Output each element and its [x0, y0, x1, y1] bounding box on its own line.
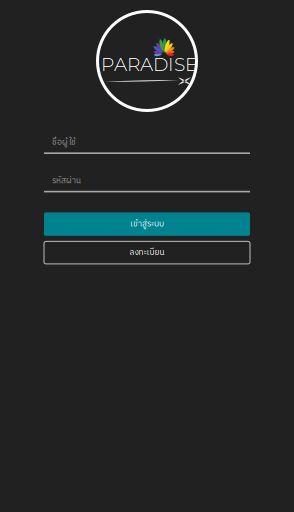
staticText: ลงทะเบียน	[129, 246, 164, 259]
staticText: เข้าสู่ระบบ	[130, 217, 164, 231]
staticText: PARADISE	[101, 53, 197, 76]
staticText: ชื่อผู้ใช้	[52, 136, 76, 149]
button[interactable]: เข้าสู่ระบบ	[44, 212, 250, 236]
button[interactable]: ลงทะเบียน	[44, 241, 250, 264]
staticText: รหัสผ่าน	[52, 174, 81, 188]
